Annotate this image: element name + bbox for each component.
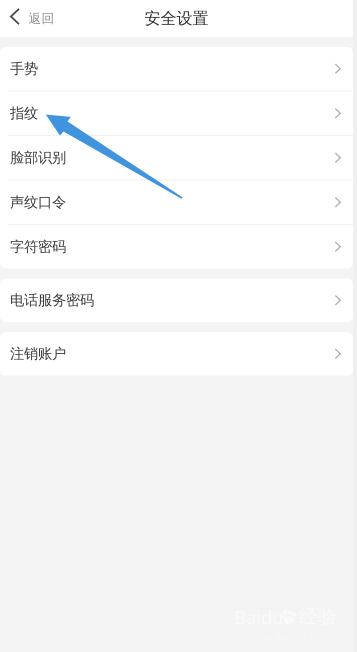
staticText: 脸部识别 [10, 149, 66, 167]
staticText: 指纹 [10, 104, 38, 122]
button[interactable]: 电话服务密码 [0, 278, 353, 322]
button[interactable]: 字符密码 [0, 225, 353, 268]
button[interactable]: 脸部识别 [0, 136, 353, 179]
staticText: 手势 [10, 60, 38, 78]
staticText: 电话服务密码 [10, 291, 94, 309]
staticText: 声纹口令 [10, 193, 66, 211]
button[interactable]: 声纹口令 [0, 180, 353, 224]
button[interactable]: 指纹 [0, 91, 353, 135]
staticText: 注销账户 [10, 345, 66, 363]
button[interactable]: 注销账户 [0, 332, 353, 375]
staticText: 字符密码 [10, 238, 66, 256]
button[interactable]: 手势 [0, 47, 353, 90]
button[interactable]: 返回 [0, 0, 66, 37]
staticText: 安全设置 [144, 8, 208, 29]
staticText: 返回 [28, 10, 54, 26]
